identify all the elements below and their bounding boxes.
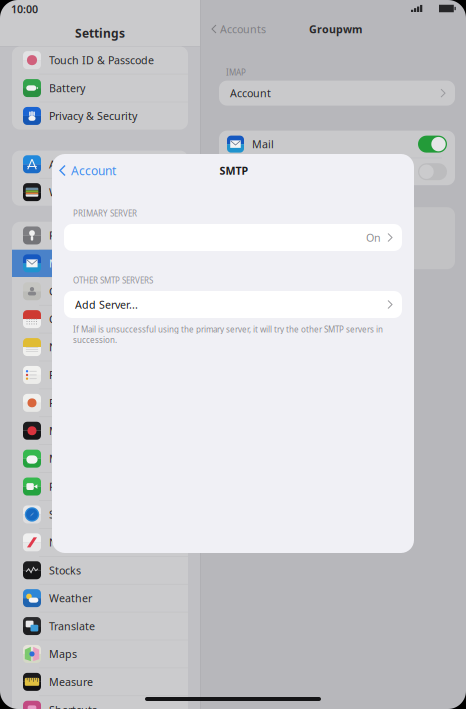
staticText: Groupwm bbox=[309, 22, 362, 36]
staticText: 10:00 bbox=[11, 2, 38, 16]
staticText: Mail bbox=[49, 256, 71, 270]
button[interactable]: Messages bbox=[12, 445, 188, 472]
staticText: Add Server... bbox=[75, 297, 138, 312]
staticText: Maps bbox=[49, 647, 77, 661]
staticText: Measure bbox=[49, 675, 93, 689]
staticText: If Mail is unsuccessful using the primar… bbox=[73, 324, 383, 345]
staticText: Messages bbox=[49, 452, 99, 466]
button[interactable]: Passwords bbox=[12, 222, 188, 249]
staticText: OTHER SMTP SERVERS bbox=[73, 275, 153, 286]
button[interactable]: Account bbox=[219, 81, 455, 106]
button[interactable]: Touch ID & Passcode bbox=[12, 46, 188, 74]
staticText: Account bbox=[71, 162, 116, 178]
button[interactable]: Battery bbox=[12, 74, 188, 102]
staticText: Mail bbox=[252, 137, 274, 151]
staticText: Privacy & Security bbox=[49, 109, 137, 123]
staticText: FaceTime bbox=[49, 479, 97, 494]
staticText: App Store bbox=[49, 157, 99, 171]
button[interactable]: Weather bbox=[12, 584, 188, 612]
button[interactable]: Add Server... bbox=[64, 291, 402, 318]
button[interactable]: Shortcuts bbox=[12, 696, 188, 709]
staticText: Photos bbox=[49, 396, 83, 410]
button[interactable]: FaceTime bbox=[12, 473, 188, 500]
staticText: Notes bbox=[49, 340, 78, 354]
button[interactable]: Contacts bbox=[12, 278, 188, 305]
button[interactable]: Wallet bbox=[12, 178, 188, 206]
button[interactable]: Mail bbox=[12, 250, 188, 277]
staticText: Accounts bbox=[220, 22, 266, 36]
staticText: Translate bbox=[49, 619, 95, 633]
button[interactable]: Reminders bbox=[12, 361, 188, 389]
staticText: Touch ID & Passcode bbox=[49, 53, 154, 67]
staticText: Stocks bbox=[49, 563, 81, 577]
staticText: Weather bbox=[49, 591, 92, 605]
staticText: Passwords bbox=[49, 228, 101, 243]
staticText: Shortcuts bbox=[49, 703, 97, 709]
staticText: Music bbox=[49, 424, 79, 438]
staticText: PRIMARY SERVER bbox=[73, 208, 137, 219]
button[interactable]: Privacy & Security bbox=[12, 102, 188, 130]
button[interactable]: Photos bbox=[12, 389, 188, 416]
button[interactable]: Measure bbox=[12, 668, 188, 695]
staticText: Calendar bbox=[49, 312, 95, 326]
button[interactable]: Accounts bbox=[200, 21, 266, 37]
button[interactable]: Account bbox=[52, 159, 116, 181]
button[interactable]: Translate bbox=[12, 612, 188, 640]
staticText: SMTP bbox=[219, 163, 248, 178]
staticText: Contacts bbox=[49, 284, 93, 298]
staticText: Safari bbox=[49, 507, 78, 522]
staticText: Settings bbox=[75, 25, 125, 41]
button[interactable]: Music bbox=[12, 417, 188, 444]
staticText: Battery bbox=[49, 81, 85, 95]
staticText: IMAP bbox=[226, 67, 246, 78]
button[interactable]: News bbox=[12, 529, 188, 556]
staticText: Account bbox=[230, 86, 271, 100]
staticText: News bbox=[49, 535, 76, 549]
button[interactable]: Safari bbox=[12, 501, 188, 528]
staticText: Reminders bbox=[49, 368, 104, 382]
staticText: On bbox=[366, 230, 381, 245]
button[interactable]: Maps bbox=[12, 640, 188, 668]
button[interactable]: Notes bbox=[12, 333, 188, 361]
staticText: Wallet bbox=[49, 185, 81, 199]
button[interactable]: Calendar bbox=[12, 305, 188, 333]
button[interactable]: Stocks bbox=[12, 557, 188, 584]
button[interactable]: On bbox=[64, 224, 402, 251]
button[interactable]: App Store bbox=[12, 151, 188, 178]
